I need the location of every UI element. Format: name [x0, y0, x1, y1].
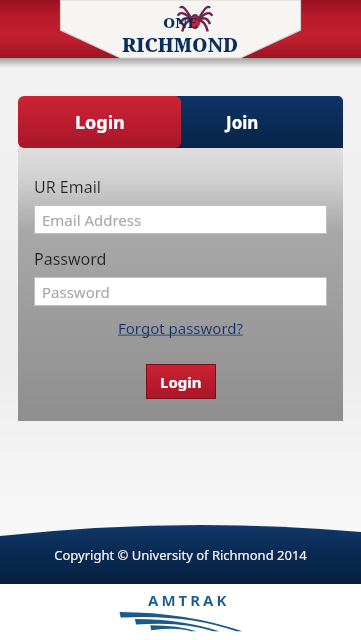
staticText: ONE — [163, 12, 198, 32]
staticText: RICHMOND — [122, 32, 239, 58]
button[interactable]: Forgot password? — [114, 314, 248, 342]
button[interactable]: Login — [18, 96, 181, 148]
staticText: Login — [75, 110, 125, 135]
other: Amtrak — [117, 590, 245, 634]
staticText: Email Address — [42, 210, 142, 230]
staticText: Password — [34, 248, 107, 270]
staticText: Join — [226, 111, 259, 134]
staticText: AMTRAK — [148, 590, 230, 610]
button[interactable]: Email Address — [34, 205, 327, 234]
staticText: Copyright © University of Richmond 2014 — [54, 546, 307, 564]
staticText: Login — [160, 372, 202, 392]
staticText: Password — [42, 282, 110, 302]
staticText: UR Email — [34, 176, 101, 198]
staticText: Forgot password? — [118, 318, 244, 338]
button[interactable]: Login — [146, 364, 216, 399]
button[interactable]: Password — [34, 277, 327, 306]
button[interactable]: Join — [141, 96, 343, 148]
